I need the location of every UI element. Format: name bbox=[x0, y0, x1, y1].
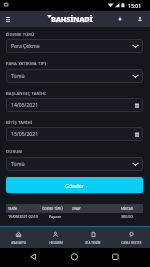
staticText: BİTİŞ TARİHİ bbox=[6, 120, 33, 126]
staticText: BAŞLANGIÇ TARİHİ bbox=[6, 91, 46, 97]
staticText: 15:01 bbox=[128, 2, 142, 9]
staticText: 380.00 bbox=[121, 214, 133, 219]
staticText: Tümü bbox=[11, 73, 25, 80]
staticText: 15/05/2021 02:10 bbox=[8, 214, 39, 219]
button[interactable]: ANASAYFA bbox=[0, 227, 37, 248]
staticText: ÖDEME TÜRÜ bbox=[6, 32, 35, 38]
button[interactable]: 14/05/2021 bbox=[6, 98, 143, 112]
staticText: 14/05/2021 bbox=[11, 102, 39, 109]
staticText: PARA YATIRMA TIPI bbox=[6, 61, 47, 67]
staticText: 15/05/2021 bbox=[11, 131, 39, 138]
button[interactable]: Tümü bbox=[6, 157, 143, 171]
staticText: BAHSİNADİ bbox=[51, 14, 93, 24]
staticText: BAHİS OYUNLARI ADRESİ bbox=[56, 21, 89, 24]
staticText: BÜLTENİM bbox=[85, 241, 101, 245]
button[interactable]: HESABIM bbox=[37, 227, 74, 248]
button[interactable]: BÜLTENİM bbox=[74, 227, 112, 248]
button[interactable]: Notifications bbox=[111, 11, 129, 27]
staticText: ANASAYFA bbox=[11, 241, 26, 245]
staticText: HESABIM bbox=[49, 241, 63, 245]
button[interactable]: Gönder bbox=[6, 177, 143, 193]
staticText: MİKTAR bbox=[121, 207, 133, 211]
staticText: ÖDEME TÜRÜ bbox=[42, 207, 63, 211]
button[interactable]: CANLI DESTEK bbox=[112, 227, 150, 248]
button[interactable]: 15/05/2021 bbox=[6, 127, 143, 141]
staticText: CANLI DESTEK bbox=[121, 241, 142, 245]
staticText: DURUM bbox=[6, 149, 23, 155]
button[interactable]: 15/05/2021 02:10 bbox=[6, 212, 143, 221]
staticText: Gönder bbox=[65, 182, 85, 189]
button[interactable]: Tümü bbox=[6, 69, 143, 83]
button[interactable]: Menu bbox=[0, 11, 16, 27]
staticText: Para Çekme bbox=[11, 43, 40, 50]
staticText: ONAY bbox=[72, 207, 81, 211]
button[interactable]: Profile bbox=[129, 11, 150, 27]
staticText: Papara bbox=[49, 214, 62, 219]
staticText: Tümü bbox=[11, 161, 25, 168]
button[interactable]: Para Çekme bbox=[6, 39, 143, 53]
staticText: TARİH bbox=[8, 207, 18, 211]
